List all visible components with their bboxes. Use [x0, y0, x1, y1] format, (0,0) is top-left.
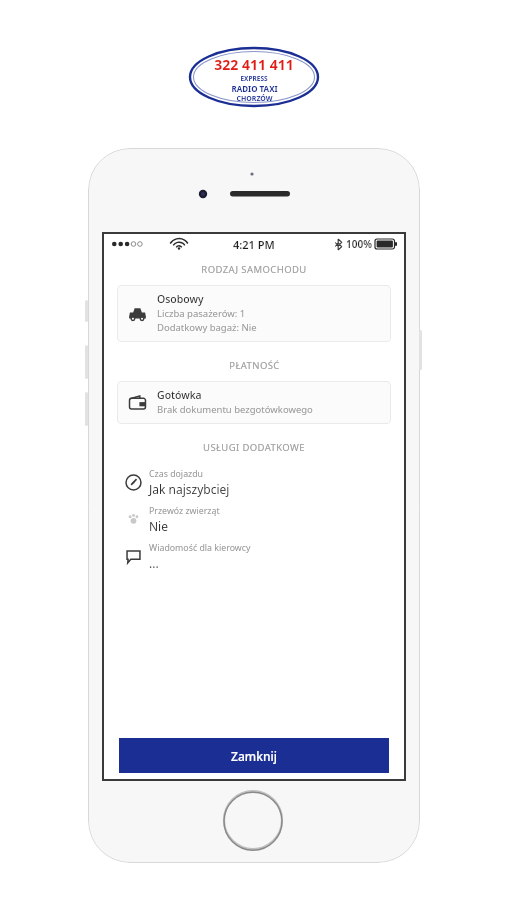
- staticText: PŁATNOŚĆ: [229, 359, 280, 372]
- staticText: ...: [149, 555, 159, 571]
- staticText: Dodatkowy bagaż: Nie: [157, 321, 257, 334]
- staticText: RODZAJ SAMOCHODU: [201, 263, 307, 276]
- staticText: 322 463 463: [214, 104, 294, 108]
- staticText: Zamknij: [231, 748, 277, 764]
- staticText: CHORZÓW: [236, 94, 273, 104]
- other: Car type: [117, 304, 157, 323]
- staticText: 322 411 411: [214, 55, 294, 74]
- staticText: RADIO TAXI: [231, 83, 278, 94]
- staticText: Osobowy: [157, 292, 204, 306]
- staticText: Jak najszybciej: [149, 481, 230, 497]
- staticText: Wiadomość dla kierowcy: [149, 542, 251, 554]
- staticText: Liczba pasażerów: 1: [157, 307, 246, 320]
- button[interactable]: Arrival time: [104, 464, 404, 501]
- button[interactable]: Payment method: [117, 381, 391, 424]
- other: Arrival time: [117, 474, 149, 491]
- staticText: USŁUGI DODATKOWE: [203, 441, 305, 454]
- staticText: Przewóz zwierząt: [149, 505, 220, 517]
- staticText: 100%: [346, 237, 372, 251]
- staticText: Czas dojazdu: [149, 468, 204, 480]
- button[interactable]: Car type: [117, 285, 391, 342]
- other: Pet transport: [117, 511, 149, 528]
- button[interactable]: Message to driver: [104, 538, 404, 575]
- button[interactable]: Zamknij: [119, 738, 389, 773]
- button[interactable]: Pet transport: [104, 501, 404, 538]
- staticText: EXPRESS: [240, 74, 268, 83]
- staticText: Gotówka: [157, 388, 202, 402]
- staticText: 4:21 PM: [233, 237, 275, 252]
- other: Payment method: [117, 393, 157, 412]
- other: Message to driver: [117, 548, 149, 565]
- staticText: Brak dokumentu bezgotówkowego: [157, 403, 313, 416]
- staticText: Nie: [149, 518, 168, 534]
